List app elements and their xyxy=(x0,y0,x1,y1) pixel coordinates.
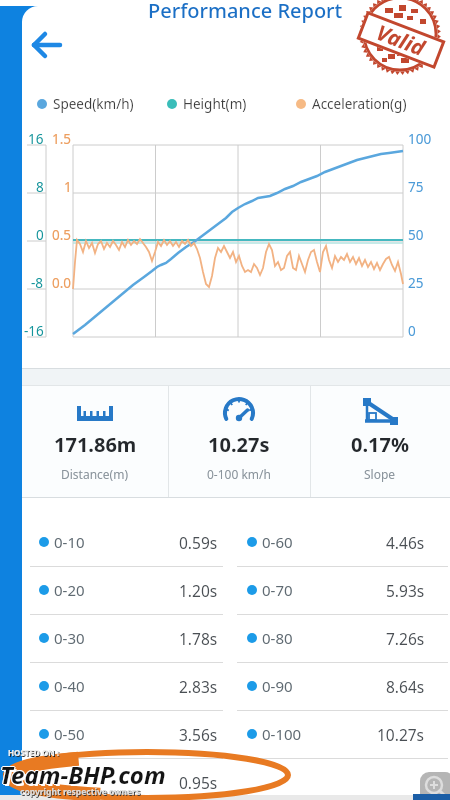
staticText: Performance Report xyxy=(148,0,343,24)
staticText: 5.93s xyxy=(386,580,425,601)
staticText: 0-90 xyxy=(262,676,293,696)
staticText: Team-BHP.com xyxy=(0,759,166,792)
staticText: Valid xyxy=(372,18,429,63)
staticText: 0-100 km/h xyxy=(207,466,271,482)
staticText: 171.86m xyxy=(54,431,137,458)
staticText: 1.5 xyxy=(52,130,72,148)
button[interactable]: 0-80 xyxy=(238,618,425,658)
button[interactable]: 0-60 xyxy=(238,522,425,562)
staticText: 100 xyxy=(408,130,432,148)
staticText: 0 xyxy=(408,322,416,340)
staticText: HOSTED ON : xyxy=(9,748,61,759)
staticText: 10.27s xyxy=(208,431,270,458)
button[interactable]: 0-20 xyxy=(30,570,218,610)
staticText: HOSTED ON : xyxy=(8,747,60,758)
button[interactable]: 10.27s xyxy=(168,390,310,496)
button[interactable]: 0-100 xyxy=(238,714,425,754)
staticText: 0.0 xyxy=(52,274,72,292)
staticText: Team-BHP.com xyxy=(2,760,168,793)
staticText: 0-50 xyxy=(54,724,85,744)
staticText: 0-60 xyxy=(262,532,293,552)
staticText: 0.17% xyxy=(351,431,409,458)
staticText: 0-40 xyxy=(54,676,85,696)
staticText: 0.95s xyxy=(179,772,218,793)
button[interactable]: 0-10 xyxy=(30,522,218,562)
staticText: Team-BHP.com xyxy=(0,757,166,790)
staticText: 8.64s xyxy=(386,676,425,697)
button[interactable]: 0-50 xyxy=(30,714,218,754)
staticText: Distance(m) xyxy=(61,466,129,482)
staticText: 1.78s xyxy=(179,628,218,649)
staticText: 2.83s xyxy=(179,676,218,697)
button[interactable]: 0.17% xyxy=(310,390,450,496)
staticText: 0-70 xyxy=(262,580,293,600)
staticText: 1.20s xyxy=(179,580,218,601)
staticText: 0-20 xyxy=(54,580,85,600)
staticText: 25 xyxy=(408,274,424,292)
staticText: 0.59s xyxy=(179,532,218,553)
staticText: 0-30 xyxy=(54,628,85,648)
button[interactable]: 0-70 xyxy=(238,570,425,610)
button[interactable] xyxy=(420,772,450,800)
staticText: Acceleration(g) xyxy=(312,95,407,113)
staticText: copyright respective owners xyxy=(21,787,142,799)
staticText: 1 xyxy=(64,178,72,196)
staticText: 0 xyxy=(36,226,44,244)
staticText: 0.5 xyxy=(52,226,72,244)
button[interactable] xyxy=(32,30,62,60)
button[interactable]: 0-90 xyxy=(238,666,425,706)
button[interactable]: 171.86m xyxy=(22,390,168,496)
staticText: Speed(km/h) xyxy=(53,95,134,113)
staticText: Team-BHP.com xyxy=(0,758,165,791)
staticText: Height(m) xyxy=(183,95,247,113)
staticText: 0-100 xyxy=(262,724,302,744)
staticText: 16 xyxy=(28,130,44,148)
staticText: 8 xyxy=(36,178,44,196)
staticText: 0-10 xyxy=(54,532,85,552)
button[interactable]: 0-30 xyxy=(30,618,218,658)
staticText: 4.46s xyxy=(386,532,425,553)
staticText: copyright respective owners xyxy=(20,786,141,798)
staticText: Slope xyxy=(364,466,396,482)
staticText: 3.56s xyxy=(179,724,218,745)
staticText: 7.26s xyxy=(386,628,425,649)
staticText: Team-BHP.com xyxy=(1,758,167,791)
staticText: 50 xyxy=(408,226,424,244)
button[interactable]: 0-40 xyxy=(30,666,218,706)
staticText: 0-80 xyxy=(262,628,293,648)
staticText: 75 xyxy=(408,178,424,196)
staticText: -8 xyxy=(31,274,44,292)
staticText: Team-BHP.com xyxy=(0,758,166,791)
staticText: 10.27s xyxy=(377,724,425,745)
staticText: -16 xyxy=(24,322,44,340)
